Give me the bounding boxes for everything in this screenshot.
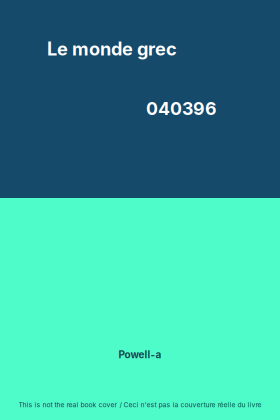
staticText: Powell-a [118,349,161,361]
staticText: 040396 [146,98,217,119]
staticText: This is not the real book cover / Ceci n… [18,401,261,409]
staticText: Le monde grec [47,38,177,60]
button[interactable]: Le monde grec, 040396, Powell-a [0,0,280,420]
